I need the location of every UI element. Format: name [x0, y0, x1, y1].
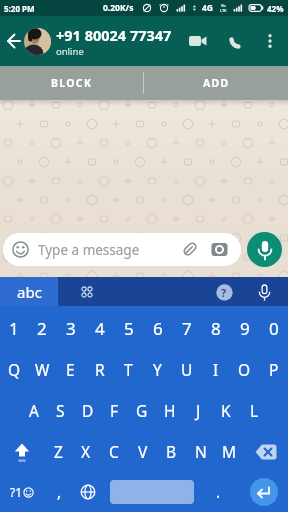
button[interactable]: O [230, 350, 259, 389]
button[interactable]: D [74, 391, 101, 430]
staticText: P [269, 359, 279, 380]
button[interactable]: , [44, 471, 74, 512]
staticText: Y [153, 359, 162, 380]
staticText: C [109, 441, 119, 462]
button[interactable] [74, 471, 102, 512]
button[interactable] [247, 232, 282, 267]
button[interactable]: Z [44, 432, 72, 471]
button[interactable]: G [128, 391, 156, 430]
button[interactable]: Q [0, 350, 28, 389]
button[interactable]: F [101, 391, 128, 430]
button[interactable]: Y [143, 350, 172, 389]
staticText: BLOCK [51, 76, 93, 90]
button[interactable] [240, 471, 288, 512]
button[interactable] [186, 21, 210, 61]
staticText: G [136, 400, 148, 421]
staticText: abc [17, 282, 42, 302]
staticText: Vo [221, 3, 226, 8]
button[interactable]: 4 [85, 309, 114, 348]
button[interactable] [244, 432, 288, 471]
button[interactable]: ?1 [0, 471, 44, 512]
button[interactable]: ? [211, 279, 237, 305]
button[interactable]: X [72, 432, 100, 471]
staticText: 42% [267, 3, 284, 14]
button[interactable]: BLOCK [0, 66, 143, 100]
staticText: Q [8, 359, 21, 380]
button[interactable]: 5 [114, 309, 143, 348]
button[interactable]: 7 [172, 309, 201, 348]
staticText: F [110, 400, 119, 421]
staticText: K [221, 400, 231, 421]
staticText: 7 [182, 317, 192, 340]
staticText: R [95, 359, 105, 380]
staticText: I [213, 359, 219, 380]
staticText: J [196, 400, 201, 421]
staticText: ?1 [10, 484, 23, 500]
button[interactable]: . [196, 471, 240, 512]
button[interactable] [58, 277, 116, 306]
button[interactable]: abc [0, 277, 58, 306]
staticText: 4G [202, 2, 214, 14]
staticText: . [216, 481, 221, 502]
button[interactable] [226, 21, 246, 61]
button[interactable] [24, 28, 51, 55]
button[interactable]: H [156, 391, 184, 430]
button[interactable]: I [201, 350, 230, 389]
staticText: 3 [66, 317, 76, 340]
button[interactable]: M [215, 432, 244, 471]
staticText: 4 [95, 317, 105, 340]
staticText: ADD [203, 76, 230, 90]
staticText: 9 [240, 317, 250, 340]
button[interactable] [252, 280, 276, 304]
button[interactable]: U [172, 350, 201, 389]
staticText: ? [221, 285, 227, 300]
button[interactable]: N [186, 432, 215, 471]
staticText: H [164, 400, 176, 421]
staticText: X [81, 441, 91, 462]
staticText: 6 [153, 317, 163, 340]
button[interactable]: ADD [144, 66, 288, 100]
staticText: 2 [37, 317, 47, 340]
button[interactable]: 6 [143, 309, 172, 348]
button[interactable]: 0 [259, 309, 288, 348]
staticText: T [124, 359, 133, 380]
staticText: S [56, 400, 65, 421]
staticText: D [82, 400, 94, 421]
button[interactable] [260, 21, 280, 61]
button[interactable]: C [100, 432, 128, 471]
staticText: 0.20K/s [103, 2, 134, 14]
staticText: V [138, 441, 148, 462]
button[interactable] [0, 432, 44, 471]
button[interactable]: B [157, 432, 186, 471]
staticText: 1 [9, 317, 19, 340]
button[interactable]: 3 [56, 309, 85, 348]
button[interactable]: Type a message [3, 233, 241, 266]
button[interactable]: V [128, 432, 157, 471]
button[interactable] [108, 471, 196, 512]
button[interactable]: A [20, 391, 47, 430]
button[interactable]: W [28, 350, 56, 389]
button[interactable]: S [47, 391, 74, 430]
button[interactable]: 9 [230, 309, 259, 348]
staticText: E [66, 359, 75, 380]
button[interactable]: L [240, 391, 268, 430]
button[interactable]: J [184, 391, 212, 430]
staticText: A [29, 400, 39, 421]
button[interactable]: 8 [201, 309, 230, 348]
button[interactable]: R [85, 350, 114, 389]
staticText: 8 [211, 317, 221, 340]
button[interactable]: 2 [28, 309, 56, 348]
staticText: Z [54, 441, 63, 462]
button[interactable] [4, 21, 24, 61]
button[interactable]: 1 [0, 309, 28, 348]
staticText: LTE [220, 8, 227, 13]
button[interactable]: T [114, 350, 143, 389]
button[interactable]: +91 80024 77347 [56, 25, 172, 58]
staticText: 5:20 PM [4, 3, 35, 14]
staticText: 5 [124, 317, 134, 340]
button[interactable]: P [259, 350, 288, 389]
button[interactable]: K [212, 391, 240, 430]
staticText: L [250, 400, 259, 421]
staticText: N [195, 441, 207, 462]
button[interactable]: E [56, 350, 85, 389]
